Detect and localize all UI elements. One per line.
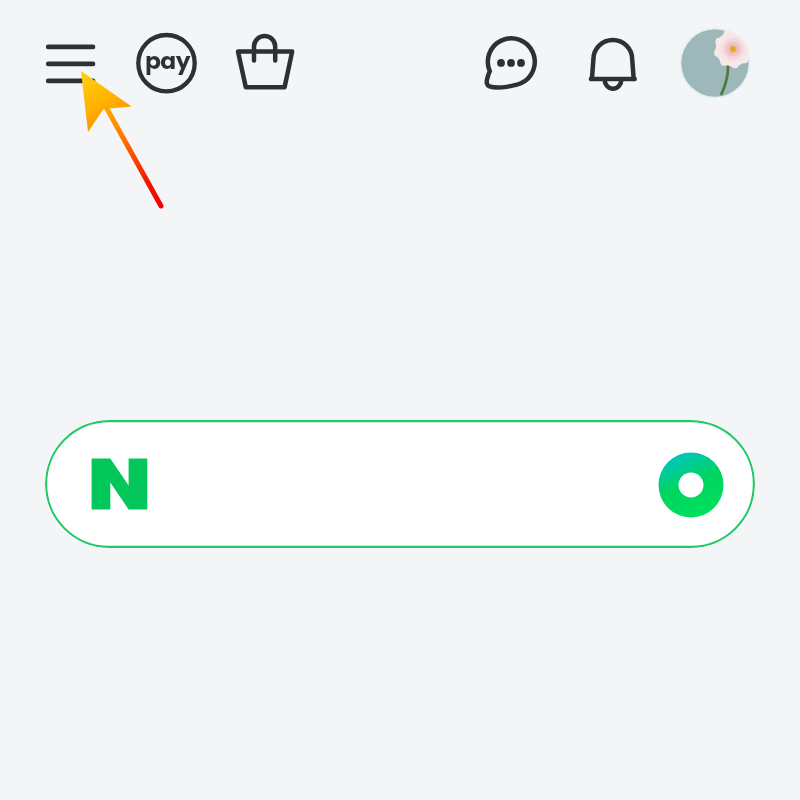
button[interactable]: Menu bbox=[38, 30, 102, 94]
button[interactable]: Shopping bbox=[229, 27, 301, 99]
button[interactable]: Naver search bbox=[45, 420, 755, 548]
button[interactable]: Naver Pay bbox=[131, 27, 203, 99]
staticText: pay bbox=[145, 44, 190, 77]
button[interactable]: Chat bbox=[475, 27, 547, 99]
button[interactable]: Notifications bbox=[577, 27, 649, 99]
button[interactable]: Profile bbox=[679, 27, 751, 99]
